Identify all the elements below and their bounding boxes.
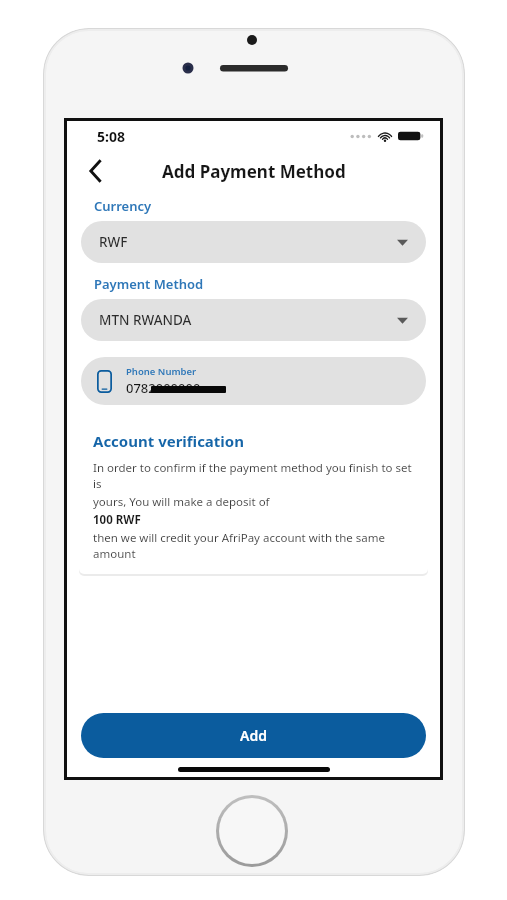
button[interactable]: Phone Number: [81, 357, 426, 405]
staticText: Account verification: [93, 431, 244, 451]
staticText: yours, You will make a deposit of: [93, 494, 270, 510]
staticText: RWF: [99, 233, 128, 251]
button[interactable]: Back: [77, 153, 113, 189]
button[interactable]: RWF: [81, 221, 426, 263]
staticText: 0782000000: [126, 379, 201, 397]
staticText: 100 RWF: [93, 512, 141, 528]
staticText: Payment Method: [94, 275, 204, 293]
button[interactable]: Home: [216, 795, 288, 867]
button[interactable]: MTN RWANDA: [81, 299, 426, 341]
staticText: MTN RWANDA: [99, 311, 192, 329]
staticText: 5:08: [97, 127, 125, 146]
staticText: Add: [240, 726, 267, 745]
staticText: then we will credit your AfriPay account…: [93, 530, 414, 562]
button[interactable]: Account verification: [79, 419, 428, 574]
button[interactable]: Add: [81, 713, 426, 758]
staticText: Phone Number: [126, 365, 197, 378]
staticText: Currency: [94, 197, 152, 215]
staticText: Add Payment Method: [162, 160, 346, 183]
staticText: In order to confirm if the payment metho…: [93, 460, 414, 492]
